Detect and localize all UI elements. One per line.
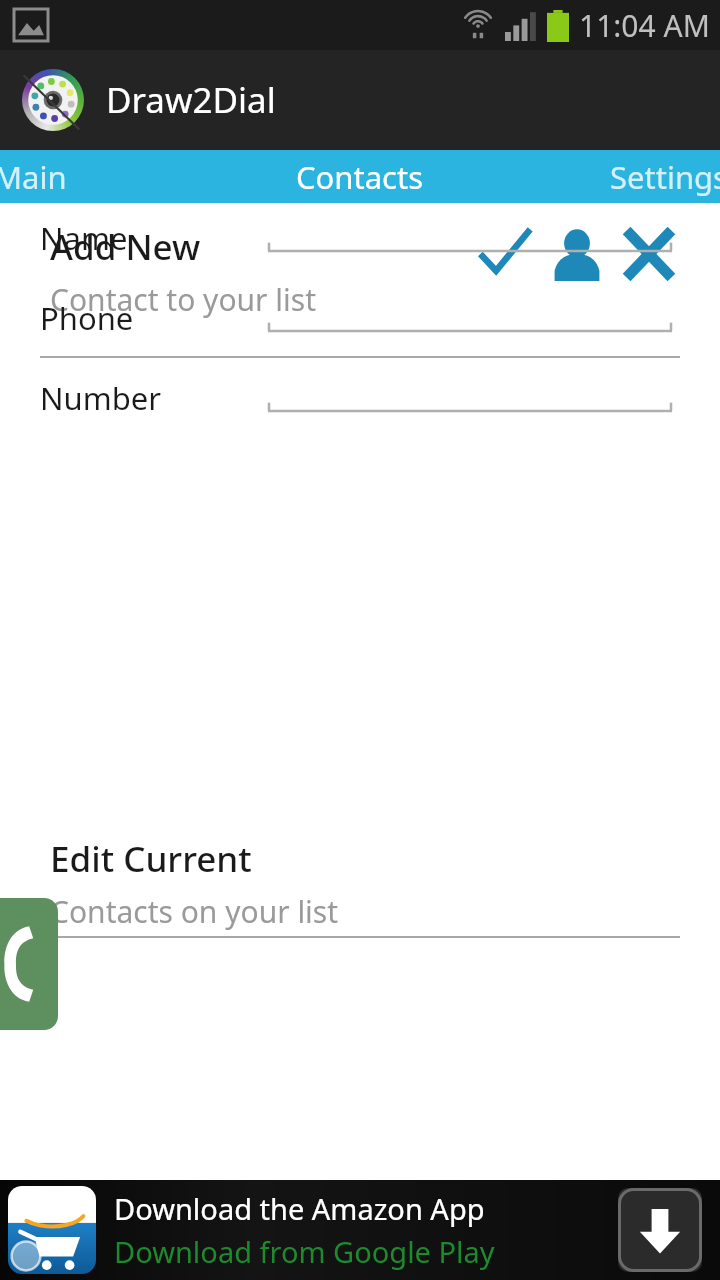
button[interactable]: Main xyxy=(0,150,240,203)
staticText: Draw2Dial xyxy=(106,76,276,124)
staticText: Name xyxy=(40,217,128,259)
button[interactable]: Pick from contacts xyxy=(544,221,610,287)
staticText: Download from Google Play xyxy=(114,1232,495,1271)
staticText: Contact to your list xyxy=(50,279,316,320)
button[interactable]: Settings xyxy=(480,150,720,203)
staticText: Add New xyxy=(50,223,201,271)
staticText: Contacts xyxy=(296,156,424,198)
button[interactable]: Save contact xyxy=(472,221,538,287)
staticText: Number xyxy=(40,377,162,419)
button[interactable]: Add New xyxy=(0,203,720,358)
button[interactable]: Download xyxy=(618,1188,702,1272)
button[interactable]: Name xyxy=(0,208,720,268)
staticText: Main xyxy=(0,156,67,198)
staticText: Download the Amazon App xyxy=(114,1189,485,1228)
button[interactable]: Phone xyxy=(0,288,720,348)
staticText: Contacts on your list xyxy=(50,891,339,932)
button[interactable]: Edit Current xyxy=(0,823,720,938)
staticText: Phone xyxy=(40,297,134,339)
button[interactable]: Download the Amazon App xyxy=(0,1180,720,1280)
button[interactable]: Contacts xyxy=(240,150,480,203)
button[interactable]: Number xyxy=(0,368,720,428)
button[interactable]: Cancel xyxy=(616,221,682,287)
staticText: Edit Current xyxy=(50,835,252,883)
staticText: 11:04 AM xyxy=(579,5,710,46)
staticText: Settings xyxy=(610,156,720,198)
button[interactable]: Dial xyxy=(0,898,58,1030)
